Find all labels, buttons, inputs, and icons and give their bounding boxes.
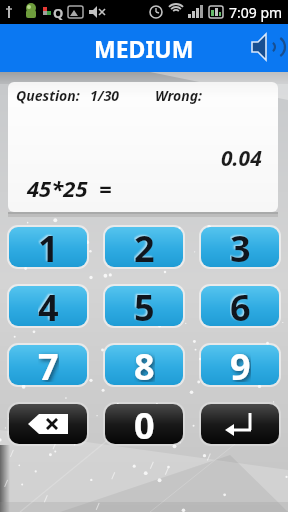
button[interactable]: 8 <box>103 343 185 387</box>
staticText: Wrong: <box>155 86 203 105</box>
staticText: 6 <box>230 286 251 323</box>
staticText: 8 <box>134 345 155 382</box>
staticText: 7:09 pm <box>229 3 283 22</box>
staticText: 2 <box>134 227 155 264</box>
staticText: 1/30 <box>90 86 120 105</box>
staticText: 3 <box>230 227 251 264</box>
button[interactable]: 6 <box>199 284 281 328</box>
button[interactable]: 9 <box>199 343 281 387</box>
staticText: 1 <box>38 227 59 264</box>
button[interactable]: 1 <box>7 225 89 269</box>
staticText: 4 <box>38 286 59 323</box>
button[interactable] <box>249 31 281 65</box>
button[interactable] <box>7 402 89 446</box>
button[interactable] <box>199 402 281 446</box>
button[interactable]: 0 <box>103 402 185 446</box>
staticText: Q <box>53 4 64 22</box>
staticText: 7 <box>38 345 59 382</box>
button[interactable]: 5 <box>103 284 185 328</box>
button[interactable]: 3 <box>199 225 281 269</box>
staticText: 0 <box>134 404 155 441</box>
button[interactable]: 7 <box>7 343 89 387</box>
staticText: 9 <box>230 345 251 382</box>
button[interactable]: 4 <box>7 284 89 328</box>
staticText: 0.04 <box>221 144 262 173</box>
staticText: MEDIUM <box>94 33 194 64</box>
staticText: 45*25 = <box>27 173 112 203</box>
staticText: 5 <box>134 286 155 323</box>
button[interactable]: 2 <box>103 225 185 269</box>
staticText: Question: <box>16 86 80 105</box>
